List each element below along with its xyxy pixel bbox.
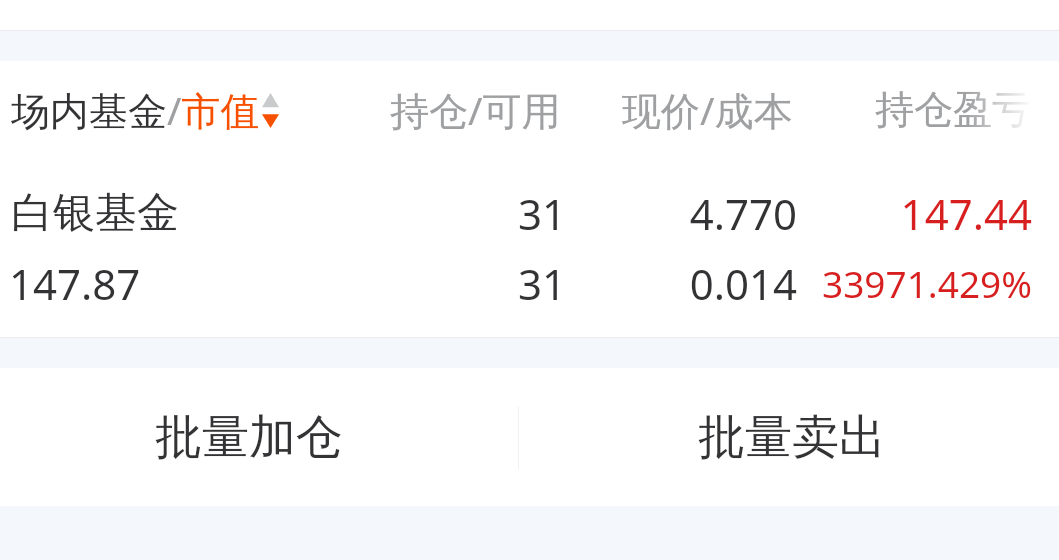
other: Sort by market value, descending: [262, 93, 279, 128]
staticText: 持仓盈亏: [875, 85, 1031, 134]
staticText: 147.87: [9, 255, 141, 312]
staticText: 批量卖出: [698, 408, 886, 467]
button[interactable]: 持仓盈亏: [840, 57, 1059, 161]
staticText: 33971.429%: [789, 258, 1032, 308]
staticText: 147.44: [789, 185, 1032, 242]
staticText: 批量加仓: [155, 408, 343, 467]
staticText: 现价/成本: [622, 83, 793, 136]
staticText: 4.770: [570, 185, 797, 242]
staticText: 持仓/可用: [390, 83, 561, 136]
button[interactable]: 批量加仓: [0, 368, 497, 506]
staticText: 0.014: [570, 255, 797, 312]
button[interactable]: 现价/成本: [600, 57, 815, 161]
button[interactable]: 白银基金: [0, 161, 1059, 337]
button[interactable]: 批量卖出: [497, 368, 1059, 506]
button[interactable]: 持仓/可用: [360, 57, 590, 161]
staticText: 场内基金/市值: [11, 83, 260, 136]
staticText: 31: [280, 255, 566, 312]
staticText: 31: [280, 185, 566, 242]
staticText: 白银基金: [11, 187, 179, 240]
button[interactable]: 场内基金/市值: [0, 57, 290, 161]
